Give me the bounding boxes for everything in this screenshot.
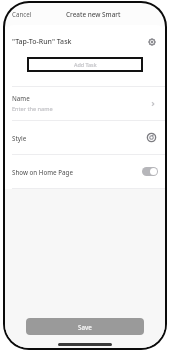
button[interactable]: Save: [26, 318, 144, 335]
button[interactable]: Show on Home Page: [5, 155, 165, 188]
staticText: Enter the name: [12, 105, 53, 113]
staticText: Create new Smart: [66, 10, 121, 19]
button[interactable]: Add Task: [27, 57, 143, 72]
button[interactable]: Show on Home Page toggle: [142, 167, 158, 176]
button[interactable]: Settings: [146, 36, 158, 48]
staticText: Save: [78, 323, 92, 331]
staticText: Show on Home Page: [12, 168, 73, 176]
other: Edit name: [148, 99, 158, 109]
staticText: Name: [12, 94, 30, 102]
button[interactable]: "Tap-To-Run" Task: [5, 33, 165, 50]
button[interactable]: Name: [5, 87, 165, 120]
button[interactable]: Style: [5, 121, 165, 154]
staticText: "Tap-To-Run" Task: [12, 37, 72, 47]
staticText: Style: [12, 134, 27, 142]
other: Choose style: [145, 131, 158, 144]
staticText: Cancel: [12, 10, 32, 18]
staticText: Add Task: [74, 61, 97, 68]
button[interactable]: Cancel: [10, 7, 34, 21]
